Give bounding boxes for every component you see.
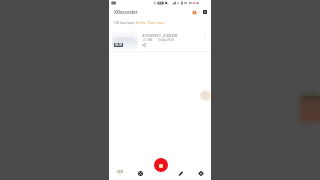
- button[interactable]: settings: [191, 152, 211, 180]
- staticText: 20160931_233000: [142, 33, 178, 39]
- staticText: Check it now >: [147, 21, 166, 25]
- button[interactable]: Menu: [200, 7, 210, 17]
- staticText: 1GB cloud space: [114, 21, 135, 25]
- staticText: for free: [136, 21, 146, 25]
- button[interactable]: Floating recorder: [199, 89, 212, 102]
- button[interactable]: Record: [154, 158, 168, 172]
- staticText: XRecorder: [114, 9, 138, 16]
- button[interactable]: 1GB cloud space: [109, 18, 211, 27]
- staticText: 00:05: [115, 43, 123, 47]
- button[interactable]: image: [130, 152, 151, 180]
- staticText: Today 09:33: [158, 38, 175, 42]
- button[interactable]: Premium: [189, 7, 199, 17]
- button[interactable]: More options: [201, 32, 210, 41]
- button[interactable]: edit: [171, 152, 191, 180]
- staticText: 4.1 MB: [143, 38, 153, 42]
- button[interactable]: video: [109, 152, 130, 180]
- button[interactable]: 00:05: [109, 28, 211, 51]
